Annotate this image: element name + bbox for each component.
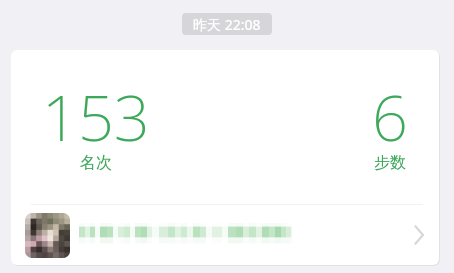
staticText: 昨天 22:08 xyxy=(193,15,261,34)
button[interactable]: 查看排行榜详情 xyxy=(11,205,439,265)
button[interactable]: 153 xyxy=(11,50,439,204)
staticText: 名次 xyxy=(80,153,112,173)
staticText: 153 xyxy=(42,74,150,160)
staticText: 步数 xyxy=(374,153,406,173)
other: 查看排行榜详情 xyxy=(412,224,425,246)
staticText: 6 xyxy=(372,74,408,160)
